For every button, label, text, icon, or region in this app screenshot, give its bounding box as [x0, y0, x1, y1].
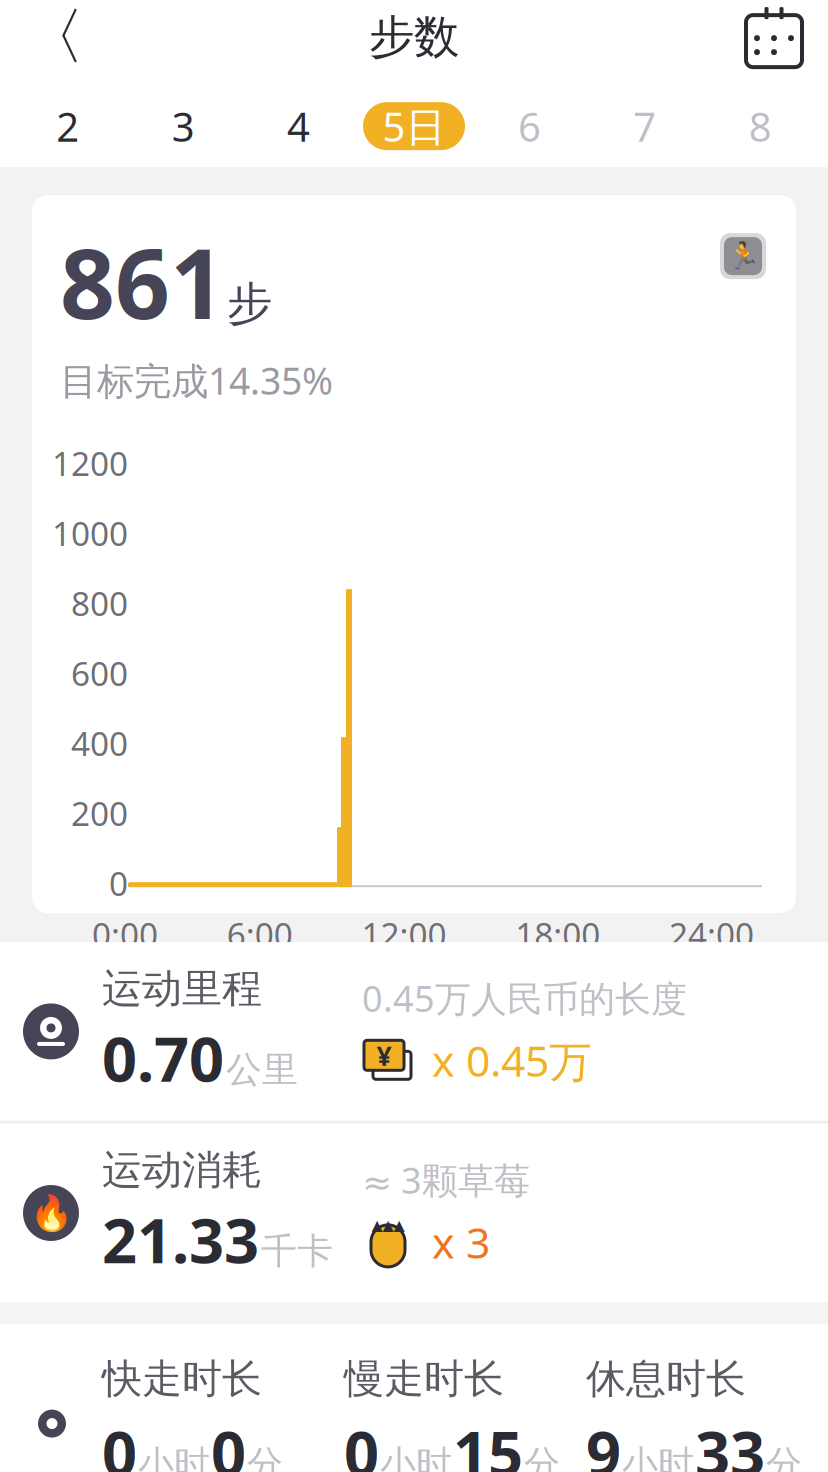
- staticText: 861: [60, 218, 225, 346]
- staticText: 小时: [622, 1442, 694, 1472]
- button[interactable]: 4: [241, 93, 356, 159]
- staticText: 21.33: [102, 1199, 259, 1280]
- staticText: 2: [56, 100, 79, 153]
- button[interactable]: 运动里程: [0, 942, 828, 1121]
- staticText: 公里: [226, 1048, 298, 1092]
- staticText: 15: [453, 1411, 523, 1472]
- staticText: 0: [102, 1411, 137, 1472]
- staticText: 7: [633, 100, 656, 153]
- button[interactable]: 5日: [356, 93, 472, 159]
- staticText: 慢走时长: [344, 1354, 504, 1403]
- staticText: 12:00: [361, 912, 446, 956]
- staticText: 800: [71, 581, 128, 625]
- staticText: 0.70: [102, 1017, 224, 1099]
- button[interactable]: 3: [125, 93, 241, 159]
- staticText: 600: [71, 651, 128, 695]
- staticText: 小时: [138, 1442, 210, 1472]
- button[interactable]: 返回: [14, 0, 94, 77]
- staticText: 3: [172, 100, 195, 153]
- staticText: 步: [227, 276, 272, 332]
- staticText: 1000: [52, 511, 128, 555]
- staticText: 1200: [52, 441, 128, 485]
- staticText: 9: [586, 1411, 621, 1472]
- staticText: 0:00: [92, 912, 158, 956]
- button[interactable]: 2: [10, 93, 125, 159]
- staticText: 千卡: [261, 1229, 333, 1273]
- staticText: 运动里程: [102, 964, 262, 1013]
- staticText: 目标完成14.35%: [60, 356, 333, 405]
- staticText: 33: [695, 1411, 765, 1472]
- staticText: 小时: [380, 1442, 452, 1472]
- staticText: 24:00: [669, 912, 754, 956]
- staticText: 400: [71, 721, 128, 765]
- staticText: 0: [344, 1411, 379, 1472]
- staticText: 步数: [369, 9, 459, 65]
- button[interactable]: 8: [703, 93, 818, 159]
- staticText: 快走时长: [102, 1354, 262, 1403]
- staticText: 分: [524, 1442, 560, 1472]
- button[interactable]: 🔥: [0, 1124, 828, 1302]
- staticText: 〈: [23, 0, 84, 75]
- staticText: 🔥: [29, 1193, 72, 1233]
- staticText: 0.45万人民币的长度: [362, 974, 687, 1022]
- staticText: 0: [109, 861, 128, 905]
- staticText: 8: [749, 100, 772, 153]
- staticText: 18:00: [515, 912, 600, 956]
- staticText: 5日: [382, 100, 445, 153]
- staticText: ¥: [376, 1038, 391, 1073]
- button[interactable]: 7: [587, 93, 702, 159]
- staticText: 🏃: [726, 241, 759, 271]
- staticText: 6:00: [227, 912, 293, 956]
- staticText: ▲▲▲: [371, 1217, 404, 1233]
- staticText: 0: [211, 1411, 246, 1472]
- button[interactable]: 日历: [734, 0, 814, 77]
- staticText: 分: [247, 1442, 283, 1472]
- button[interactable]: 快走时长: [0, 1324, 828, 1472]
- button[interactable]: 6: [472, 93, 587, 159]
- staticText: 分: [766, 1442, 802, 1472]
- staticText: 200: [71, 791, 128, 835]
- staticText: ≈ 3颗草莓: [362, 1156, 530, 1204]
- staticText: 6: [518, 100, 541, 153]
- staticText: x 0.45万: [432, 1032, 592, 1089]
- staticText: 运动消耗: [102, 1146, 262, 1195]
- staticText: x 3: [432, 1214, 490, 1270]
- staticText: 休息时长: [586, 1354, 746, 1403]
- staticText: 4: [287, 100, 310, 153]
